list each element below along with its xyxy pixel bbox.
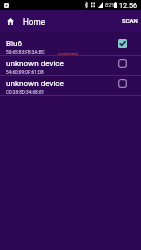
staticText: unknown device [6, 58, 64, 67]
staticText: SCAN [122, 17, 138, 24]
staticText: Blu6 [6, 38, 23, 47]
staticText: C0:28:8D:34:68:81 [6, 90, 45, 96]
button[interactable]: SCAN [117, 13, 141, 28]
button[interactable]: Select unknown device [118, 79, 127, 88]
button[interactable]: unknown device [0, 76, 141, 96]
button[interactable]: Blu6 [0, 36, 141, 56]
button[interactable]: Select Blu6 [118, 39, 127, 48]
staticText: connected [58, 51, 78, 56]
staticText: 50:65:83:FB:3A:BC [6, 50, 45, 56]
staticText: unknown device [6, 78, 64, 87]
staticText: 12.56 [119, 1, 138, 9]
button[interactable]: Home [0, 11, 21, 32]
button[interactable]: unknown device [0, 56, 141, 76]
button[interactable]: Select unknown device [118, 59, 127, 68]
staticText: 82% [105, 2, 116, 9]
staticText: 54:60:09:0F:61:D8 [6, 70, 44, 76]
staticText: Home [23, 17, 46, 27]
